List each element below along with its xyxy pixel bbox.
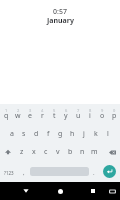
button[interactable]: 1 xyxy=(0,104,12,125)
staticText: x xyxy=(32,147,36,157)
button[interactable]: ?123 xyxy=(0,161,18,182)
button[interactable]: l xyxy=(102,125,114,143)
button[interactable]: 7 xyxy=(72,104,84,125)
button[interactable]: j xyxy=(78,125,90,143)
staticText: 0 xyxy=(113,108,116,113)
staticText: l xyxy=(107,129,109,139)
staticText: w xyxy=(15,111,21,121)
button[interactable]: 5 xyxy=(48,104,60,125)
staticText: h xyxy=(70,129,75,139)
staticText: 6 xyxy=(65,108,68,113)
staticText: n xyxy=(80,147,85,157)
staticText: f xyxy=(47,129,50,139)
staticText: m xyxy=(91,147,98,157)
button[interactable]: a xyxy=(6,125,18,143)
staticText: . xyxy=(93,169,95,177)
staticText: 9 xyxy=(101,108,104,113)
staticText: s xyxy=(22,129,26,139)
button[interactable]: 9 xyxy=(96,104,108,125)
button[interactable]: g xyxy=(54,125,66,143)
staticText: o xyxy=(100,111,105,121)
staticText: 7 xyxy=(77,108,80,113)
button[interactable]: Comma xyxy=(18,161,30,182)
staticText: 4 xyxy=(41,108,44,113)
button[interactable]: Switch keyboard xyxy=(104,182,120,200)
button[interactable]: b xyxy=(64,143,76,161)
staticText: u xyxy=(76,111,81,121)
staticText: i xyxy=(89,111,91,121)
button[interactable]: 2 xyxy=(12,104,24,125)
staticText: b xyxy=(68,147,73,157)
staticText: January xyxy=(47,16,74,26)
staticText: z xyxy=(20,147,24,157)
staticText: r xyxy=(41,111,44,121)
button[interactable]: Backspace xyxy=(100,143,120,161)
button[interactable]: 6 xyxy=(60,104,72,125)
staticText: j xyxy=(83,129,85,139)
staticText: y xyxy=(64,111,68,121)
button[interactable]: m xyxy=(88,143,100,161)
button[interactable]: d xyxy=(30,125,42,143)
button[interactable]: Recent apps xyxy=(68,182,104,200)
staticText: 3 xyxy=(29,108,32,113)
staticText: k xyxy=(94,129,98,139)
button[interactable]: c xyxy=(40,143,52,161)
staticText: p xyxy=(112,111,117,121)
button[interactable]: 8 xyxy=(84,104,96,125)
staticText: a xyxy=(10,129,14,139)
button[interactable]: f xyxy=(42,125,54,143)
staticText: g xyxy=(58,129,63,139)
staticText: 5 xyxy=(53,108,56,113)
staticText: v xyxy=(56,147,60,157)
button[interactable]: Shift xyxy=(0,143,16,161)
button[interactable]: Hide keyboard xyxy=(0,182,52,200)
staticText: 2 xyxy=(17,108,20,113)
button[interactable]: v xyxy=(52,143,64,161)
staticText: d xyxy=(34,129,39,139)
staticText: ?123 xyxy=(4,170,14,176)
staticText: e xyxy=(28,111,32,121)
button[interactable]: 4 xyxy=(36,104,48,125)
staticText: 1 xyxy=(5,108,8,113)
staticText: 0:57 xyxy=(53,7,67,17)
button[interactable]: Home xyxy=(52,182,68,200)
button[interactable]: 0 xyxy=(108,104,120,125)
button[interactable]: Period xyxy=(89,161,98,182)
button[interactable]: z xyxy=(16,143,28,161)
staticText: , xyxy=(23,169,25,177)
button[interactable]: k xyxy=(90,125,102,143)
button[interactable]: x xyxy=(28,143,40,161)
staticText: 8 xyxy=(89,108,92,113)
button[interactable]: n xyxy=(76,143,88,161)
staticText: c xyxy=(44,147,48,157)
staticText: t xyxy=(53,111,56,121)
button[interactable]: h xyxy=(66,125,78,143)
button[interactable]: Enter xyxy=(103,165,116,178)
button[interactable]: s xyxy=(18,125,30,143)
button[interactable]: 3 xyxy=(24,104,36,125)
staticText: q xyxy=(4,111,9,121)
